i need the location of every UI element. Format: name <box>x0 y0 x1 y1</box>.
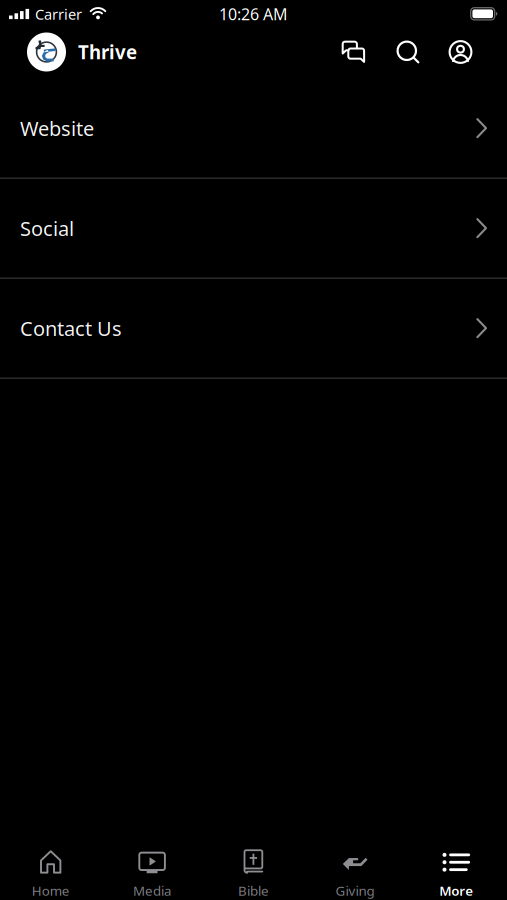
staticText: Media <box>133 882 171 899</box>
button[interactable]: Contact Us <box>0 279 507 379</box>
staticText: Social <box>20 215 74 242</box>
button[interactable]: Search <box>379 27 437 77</box>
staticText: Website <box>20 115 94 142</box>
button[interactable]: Messages <box>330 27 379 77</box>
staticText: Bible <box>238 882 269 899</box>
button[interactable]: Bible <box>203 849 304 898</box>
button[interactable]: Giving <box>304 849 406 898</box>
staticText: Contact Us <box>20 315 122 342</box>
staticText: Home <box>32 882 70 899</box>
button[interactable]: Social <box>0 179 507 279</box>
button[interactable]: Home <box>0 849 101 898</box>
staticText: More <box>439 882 473 899</box>
staticText: Carrier <box>35 4 82 24</box>
staticText: Giving <box>335 882 374 899</box>
button[interactable]: Website <box>0 79 507 179</box>
staticText: Thrive <box>78 40 137 64</box>
button[interactable]: Media <box>101 849 203 898</box>
button[interactable]: Account <box>437 27 484 77</box>
button[interactable]: More <box>406 849 507 898</box>
staticText: 10:26 AM <box>219 3 288 25</box>
